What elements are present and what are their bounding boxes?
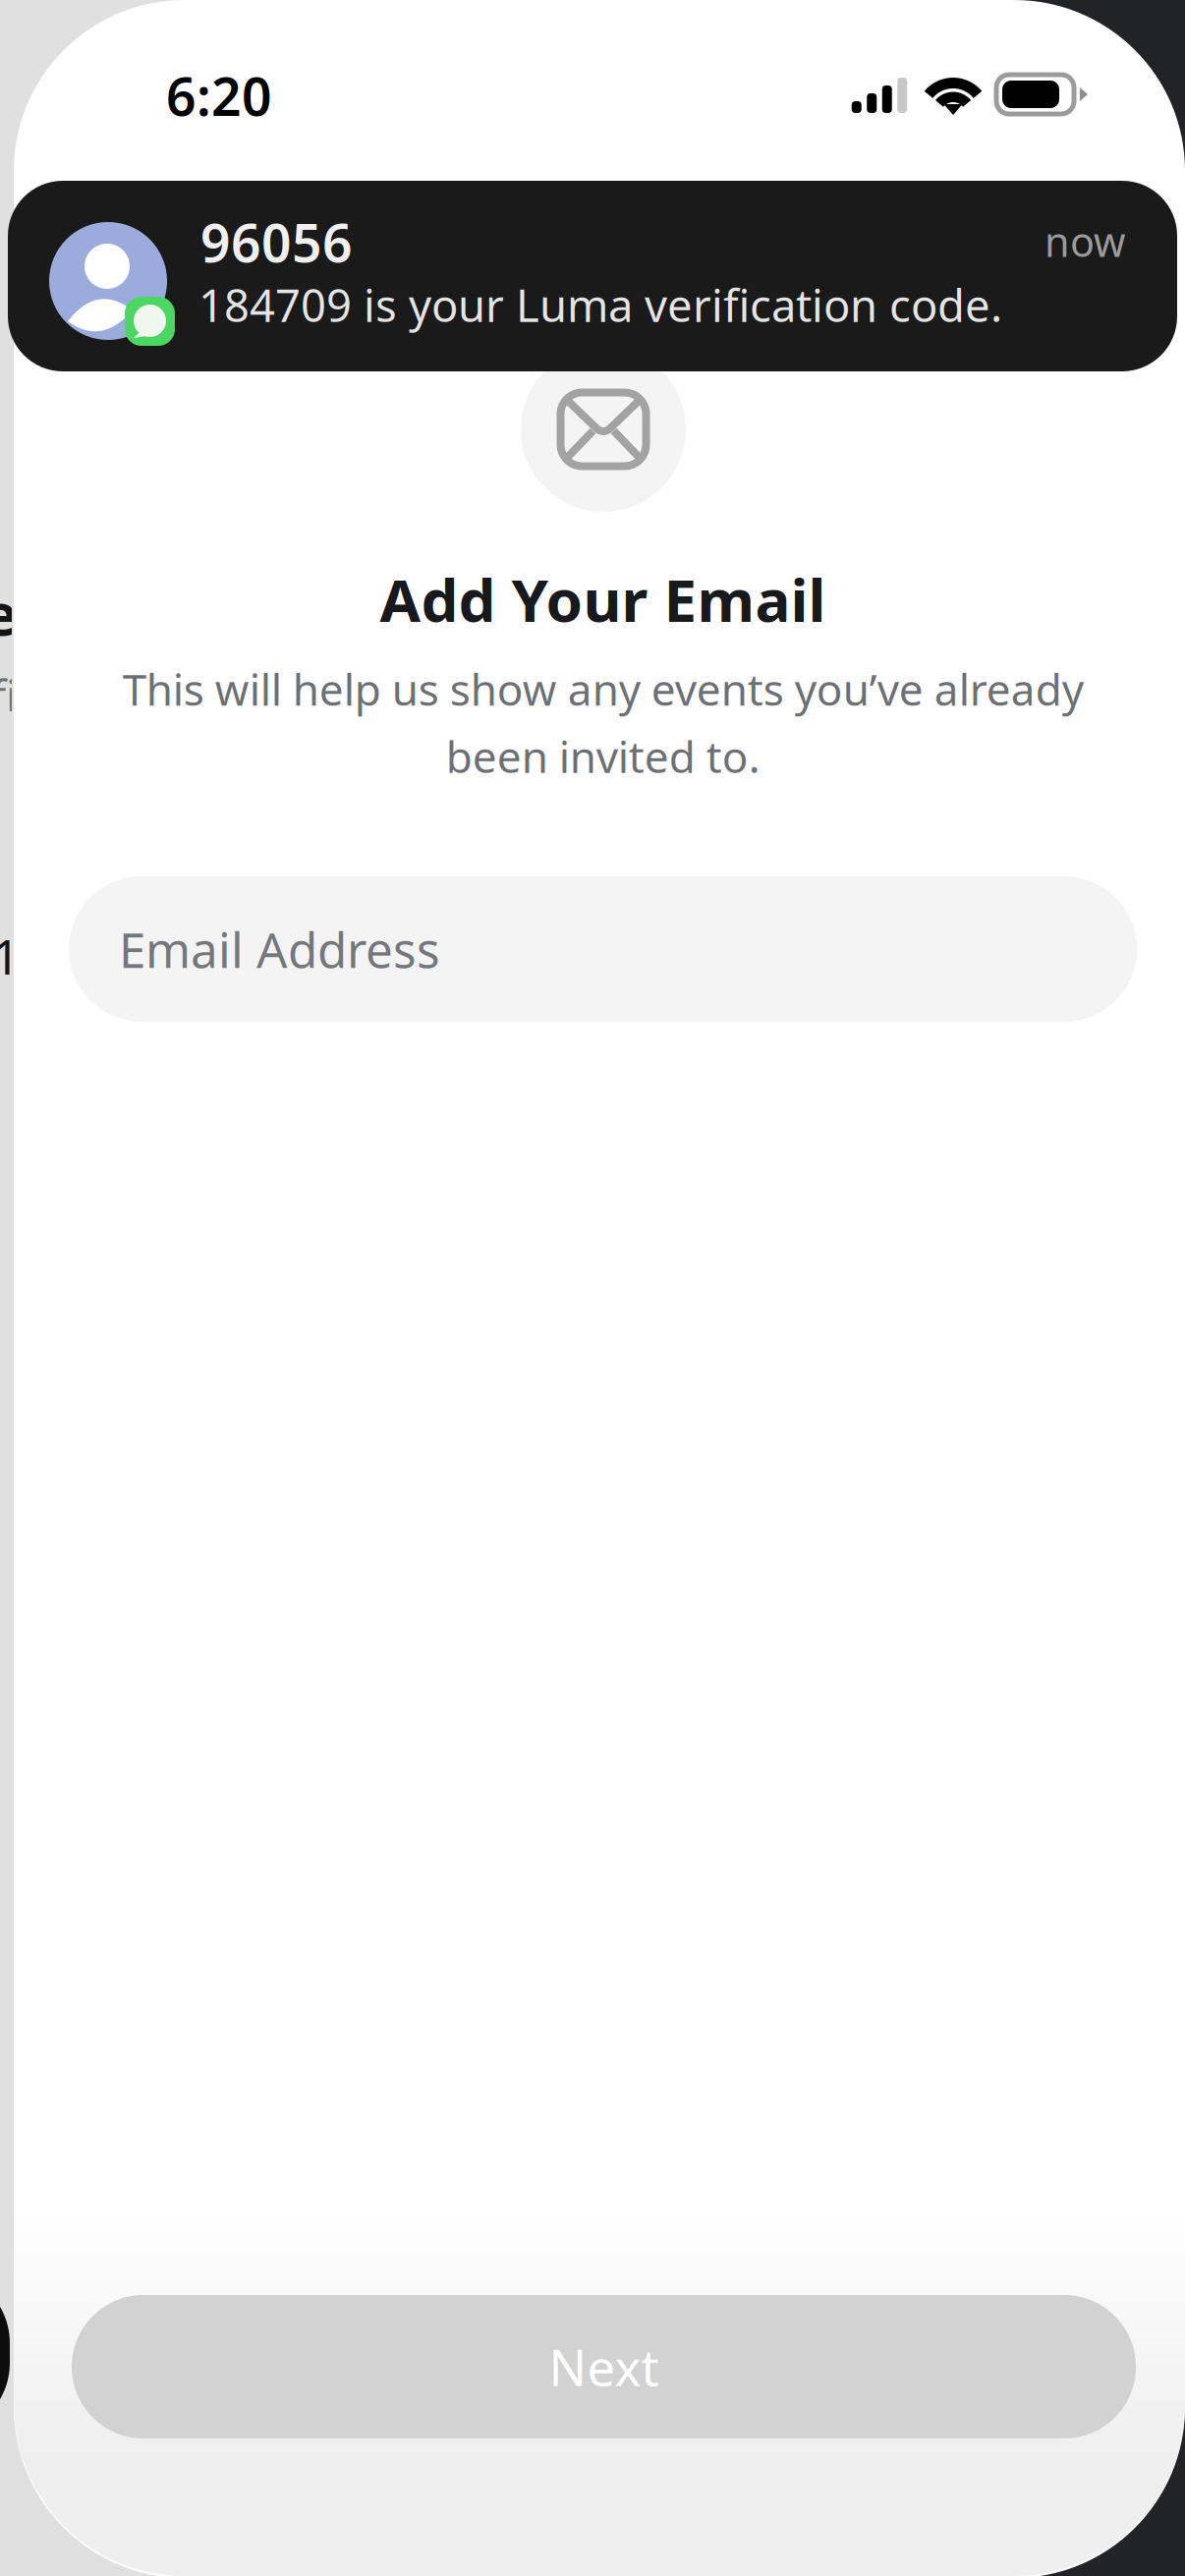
staticText: 96056 — [200, 207, 353, 277]
staticText: 1 — [0, 924, 20, 988]
button[interactable]: Next — [72, 2295, 1136, 2438]
staticText: 6:20 — [166, 61, 272, 130]
staticText: e — [0, 574, 18, 652]
staticText: Add Your Email — [380, 560, 826, 638]
staticText: 184709 is your Luma verification code. — [198, 275, 1002, 334]
button[interactable]: Email Address — [69, 876, 1137, 1022]
staticText: Email Address — [119, 917, 440, 981]
staticText: Next — [549, 2334, 659, 2400]
staticText: now — [1044, 214, 1125, 268]
staticText: This will help us show any events you’ve… — [122, 660, 1083, 785]
staticText: fi — [0, 666, 17, 723]
button[interactable]: 96056 — [8, 181, 1177, 371]
